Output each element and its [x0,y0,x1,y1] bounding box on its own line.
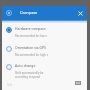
button[interactable]: Close [76,9,85,18]
staticText: Recommended for low s [15,34,47,38]
button[interactable]: Auto-change [2,63,87,79]
button[interactable]: App icon [4,9,13,18]
staticText: Hardware compass [15,26,46,31]
staticText: Orientation via GPS [15,45,46,50]
button[interactable]: Orientation via GPS [2,45,87,57]
button[interactable]: Keyboard [75,81,81,85]
staticText: Shift automatically be according to spee… [15,71,44,79]
button[interactable]: Hardware compass [2,26,87,38]
staticText: 5.6 [7,83,12,87]
staticText: Recommended for high s [15,53,49,57]
staticText: Compass [20,10,38,15]
staticText: Auto-change [15,63,36,68]
